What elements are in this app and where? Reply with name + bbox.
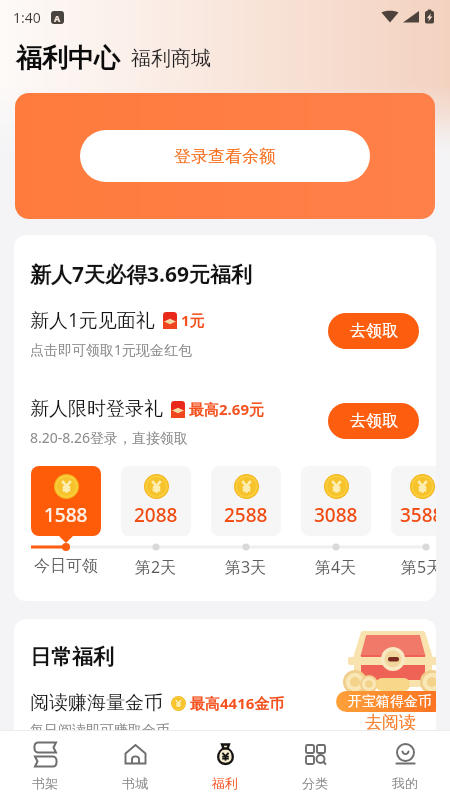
button[interactable]: 2588: [211, 466, 281, 536]
staticText: 2588: [224, 502, 268, 528]
staticText: 第5天: [401, 556, 436, 578]
staticText: 新人1元见面礼: [30, 307, 155, 333]
button[interactable]: 书城: [90, 731, 180, 800]
button[interactable]: 书架: [0, 731, 90, 800]
button[interactable]: 1588: [31, 466, 101, 536]
staticText: 分类: [302, 775, 328, 791]
staticText: 我的: [392, 775, 418, 791]
staticText: 最高4416金币: [190, 693, 285, 713]
staticText: 3088: [314, 502, 358, 528]
staticText: 新人7天必得3.69元福利: [30, 260, 252, 289]
button[interactable]: 3088: [301, 466, 371, 536]
staticText: 书城: [122, 775, 148, 791]
button[interactable]: 3588: [391, 466, 436, 536]
staticText: 3588: [400, 502, 436, 528]
staticText: 阅读赚海量金币: [30, 691, 163, 715]
staticText: 最高2.69元: [189, 399, 264, 419]
staticText: 去阅读: [365, 712, 416, 733]
staticText: 第2天: [135, 556, 177, 578]
button[interactable]: 开宝箱得金币: [336, 691, 436, 712]
button[interactable]: 去阅读: [365, 712, 416, 733]
staticText: 福利商城: [131, 46, 211, 71]
button[interactable]: 去领取: [328, 313, 419, 349]
staticText: 1588: [44, 502, 88, 528]
staticText: 去领取: [350, 411, 398, 431]
staticText: 开宝箱得金币: [348, 693, 432, 711]
staticText: 2088: [134, 502, 178, 528]
staticText: 福利中心: [16, 42, 120, 75]
button[interactable]: 分类: [270, 731, 360, 800]
button[interactable]: 登录查看余额: [80, 130, 370, 182]
staticText: 第3天: [225, 556, 267, 578]
button[interactable]: 福利商城: [131, 46, 211, 71]
staticText: 每日阅读即可赚取金币: [30, 722, 170, 740]
button[interactable]: 福利: [180, 731, 270, 800]
staticText: 点击即可领取1元现金红包: [30, 340, 193, 359]
staticText: 第4天: [315, 556, 357, 578]
button[interactable]: 登录查看余额: [15, 93, 435, 219]
staticText: 1元: [181, 310, 205, 330]
button[interactable]: 去领取: [328, 403, 419, 439]
button[interactable]: 2088: [121, 466, 191, 536]
staticText: A: [54, 12, 61, 24]
staticText: 1:40: [13, 8, 41, 27]
staticText: 8.20-8.26登录，直接领取: [30, 428, 189, 447]
staticText: 今日可领: [34, 556, 98, 576]
staticText: 新人限时登录礼: [30, 397, 163, 421]
staticText: 日常福利: [30, 644, 114, 670]
staticText: 登录查看余额: [174, 146, 276, 167]
staticText: 福利: [212, 775, 238, 791]
button[interactable]: 我的: [360, 731, 450, 800]
staticText: 书架: [32, 775, 58, 791]
staticText: 去领取: [350, 321, 398, 341]
